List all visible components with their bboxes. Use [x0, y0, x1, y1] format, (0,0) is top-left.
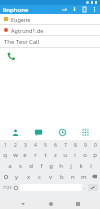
staticText: x	[27, 173, 31, 181]
button[interactable]: o	[80, 149, 90, 160]
button[interactable]: Call	[0, 48, 22, 63]
button[interactable]: n	[67, 171, 78, 182]
staticText: s	[19, 162, 22, 170]
button[interactable]: z	[50, 149, 60, 160]
button[interactable]: More options	[91, 6, 98, 13]
staticText: k	[79, 162, 83, 170]
staticText: linphone	[3, 6, 29, 14]
button[interactable]: k	[76, 160, 86, 171]
button[interactable]: 1	[0, 141, 10, 149]
button[interactable]: 6	[50, 141, 60, 149]
staticText: g	[49, 162, 53, 170]
button[interactable]: History	[54, 124, 70, 140]
button[interactable]: The Test Call	[0, 36, 100, 47]
button[interactable]: b	[56, 171, 67, 182]
button[interactable]: Shift	[0, 171, 11, 182]
button[interactable]: f	[36, 160, 46, 171]
button[interactable]: h	[56, 160, 66, 171]
staticText: b	[60, 173, 64, 181]
button[interactable]: Dialpad	[77, 124, 93, 140]
button[interactable]: 8	[70, 141, 80, 149]
staticText: r	[34, 151, 37, 159]
button[interactable]: ?123	[2, 184, 12, 191]
staticText: j	[70, 162, 72, 170]
staticText: Agtrund1.de	[11, 27, 44, 34]
button[interactable]: u	[60, 149, 70, 160]
staticText: The Test Call	[4, 38, 40, 46]
staticText: 3	[24, 142, 27, 149]
staticText: .	[84, 184, 86, 191]
button[interactable]: Contacts	[81, 6, 88, 13]
staticText: a	[8, 162, 12, 170]
staticText: 8	[74, 142, 77, 149]
staticText: w	[13, 151, 18, 159]
staticText: t	[44, 151, 47, 159]
staticText: z	[54, 151, 57, 159]
button[interactable]: Back	[17, 198, 28, 209]
staticText: i	[74, 151, 76, 159]
button[interactable]: p	[90, 149, 100, 160]
button[interactable]: 3	[20, 141, 30, 149]
button[interactable]: 5	[40, 141, 50, 149]
button[interactable]: w	[10, 149, 20, 160]
button[interactable]: a	[4, 160, 15, 171]
button[interactable]: q	[0, 149, 10, 160]
button[interactable]: Transfer	[61, 6, 68, 13]
button[interactable]: t	[40, 149, 50, 160]
staticText: c	[38, 173, 41, 181]
button[interactable]: j	[66, 160, 76, 171]
staticText: 1	[4, 142, 7, 149]
staticText: 4	[34, 142, 37, 149]
button[interactable]: m	[78, 171, 89, 182]
button[interactable]: Messages	[30, 124, 46, 140]
button[interactable]: e	[20, 149, 30, 160]
button[interactable]: i	[70, 149, 80, 160]
button[interactable]: y	[11, 171, 23, 182]
staticText: 2	[14, 142, 17, 149]
button[interactable]: Backspace	[89, 171, 100, 182]
staticText: 6	[54, 142, 57, 149]
button[interactable]: .	[82, 184, 88, 191]
staticText: m	[81, 173, 87, 181]
button[interactable]: d	[26, 160, 36, 171]
button[interactable]: 0	[90, 141, 100, 149]
staticText: h	[59, 162, 63, 170]
staticText: u	[63, 151, 67, 159]
button[interactable]: v	[45, 171, 56, 182]
button[interactable]: Enter	[88, 184, 98, 191]
staticText: 5	[44, 142, 47, 149]
button[interactable]: 9	[80, 141, 90, 149]
button[interactable]: c	[34, 171, 45, 182]
staticText: 0	[94, 142, 97, 149]
button[interactable]: Home	[45, 198, 56, 209]
staticText: o	[83, 151, 87, 159]
staticText: v	[49, 173, 53, 181]
staticText: Eugene	[11, 16, 31, 23]
button[interactable]: Recents	[72, 198, 83, 209]
button[interactable]: Emoji	[12, 184, 20, 191]
button[interactable]: x	[23, 171, 34, 182]
staticText: 9	[84, 142, 87, 149]
staticText: l	[90, 162, 92, 170]
staticText: ?123	[3, 185, 12, 190]
button[interactable]: 7	[60, 141, 70, 149]
staticText: n	[71, 173, 75, 181]
staticText: f	[40, 162, 43, 170]
button[interactable]: 2	[10, 141, 20, 149]
staticText: e	[23, 151, 27, 159]
button[interactable]: g	[46, 160, 56, 171]
button[interactable]: Eugene	[0, 14, 100, 25]
button[interactable]: l	[86, 160, 96, 171]
staticText: p	[93, 151, 97, 159]
staticText: q	[3, 151, 7, 159]
button[interactable]: Agtrund1.de	[0, 25, 100, 36]
button[interactable]: s	[15, 160, 26, 171]
button[interactable]: 4	[30, 141, 40, 149]
staticText: 7	[64, 142, 67, 149]
staticText: d	[29, 162, 33, 170]
button[interactable]: r	[30, 149, 40, 160]
staticText: y	[15, 173, 19, 181]
button[interactable]: Download	[71, 6, 78, 13]
button[interactable]: Contacts	[7, 124, 23, 140]
